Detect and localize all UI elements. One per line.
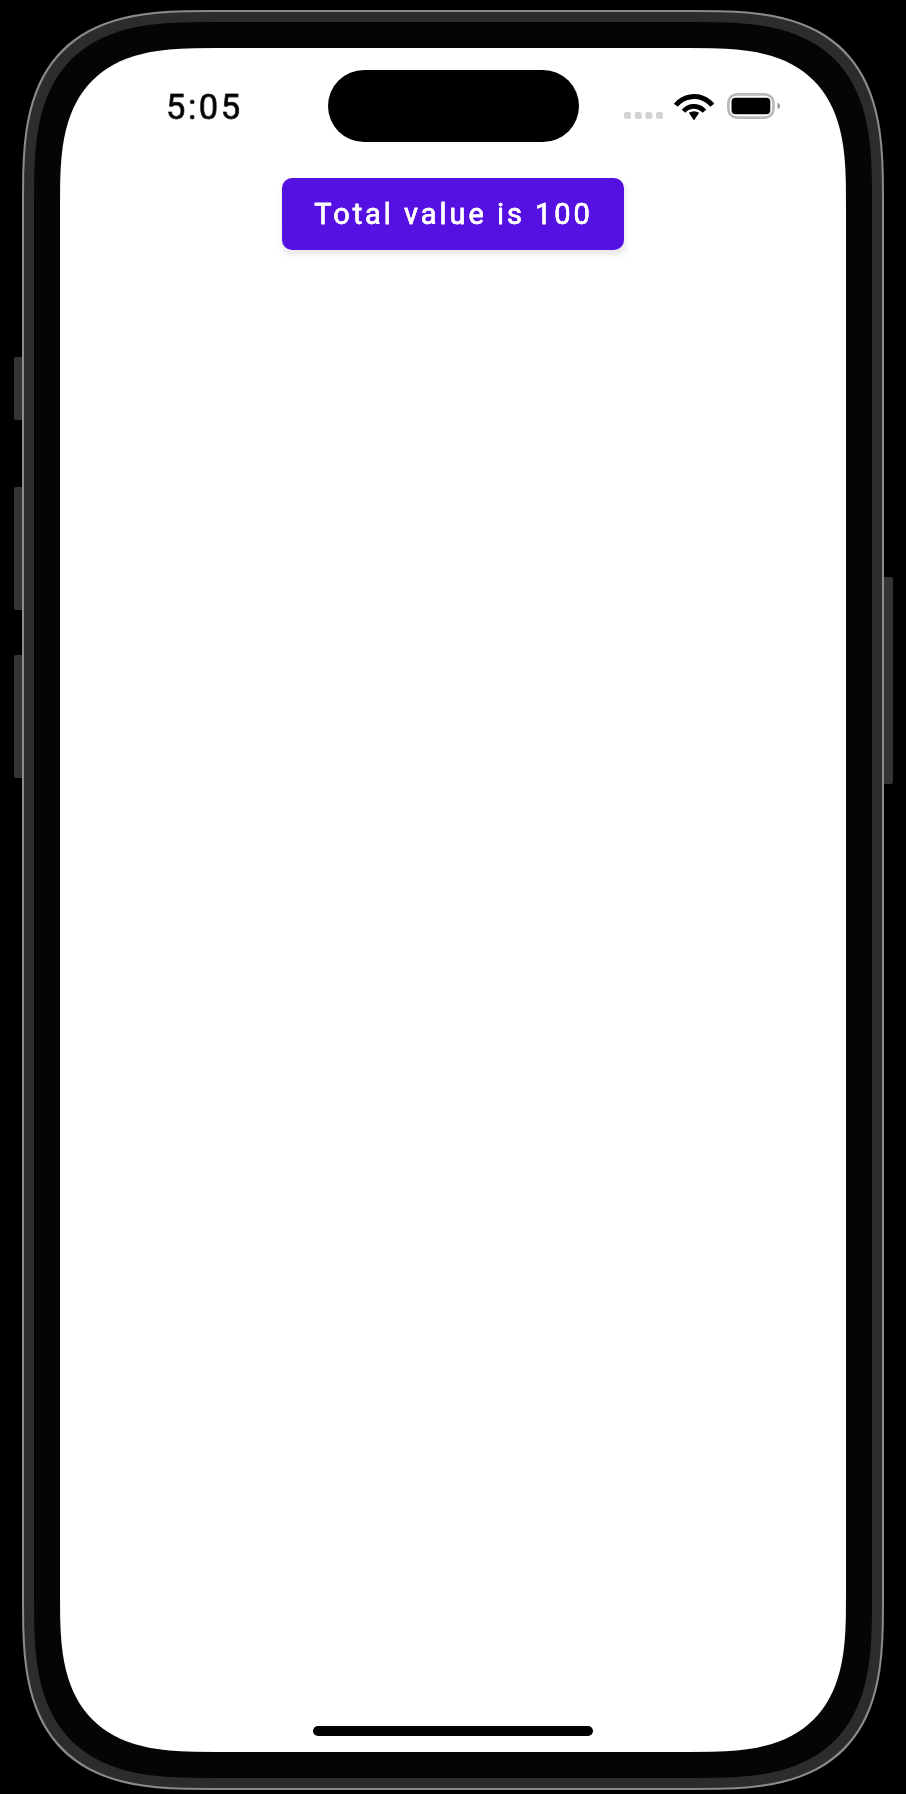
other: Battery [727,93,781,119]
button[interactable]: Total value is 100 [282,178,624,250]
other: Wi-Fi [677,94,711,120]
button[interactable]: Volume down [14,655,24,778]
staticText: Total value is 100 [314,197,593,231]
staticText: 5:05 [166,87,243,127]
staticText: Total value is 100 [314,197,593,231]
button[interactable]: Ring/Silent switch [14,357,24,420]
button[interactable]: Volume up [14,487,24,610]
button[interactable]: Side button [882,577,893,784]
button[interactable]: Home indicator [313,1726,593,1736]
staticText: 5:05 [166,87,243,127]
other: Cellular signal [624,112,663,119]
